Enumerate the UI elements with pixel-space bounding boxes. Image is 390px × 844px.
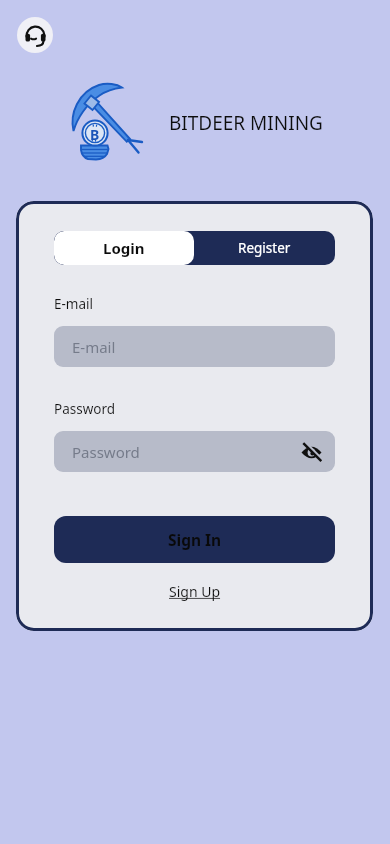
staticText: Password bbox=[54, 400, 116, 418]
staticText: BITDEER MINING bbox=[169, 110, 323, 136]
button[interactable] bbox=[17, 17, 53, 53]
staticText: Login bbox=[103, 238, 145, 258]
button[interactable]: E-mail bbox=[54, 326, 335, 367]
button[interactable]: Password bbox=[54, 431, 335, 472]
staticText: Register bbox=[238, 239, 291, 257]
staticText: Password bbox=[72, 442, 299, 462]
staticText: B bbox=[90, 125, 100, 144]
staticText: E-mail bbox=[72, 337, 116, 357]
button[interactable]: Sign Up bbox=[54, 582, 335, 601]
button[interactable]: Sign In bbox=[54, 516, 335, 563]
staticText: Sign In bbox=[168, 529, 222, 550]
button[interactable]: Register bbox=[194, 231, 335, 265]
staticText: Sign Up bbox=[169, 582, 221, 601]
staticText: E-mail bbox=[54, 295, 94, 313]
button[interactable]: Login bbox=[54, 231, 194, 265]
